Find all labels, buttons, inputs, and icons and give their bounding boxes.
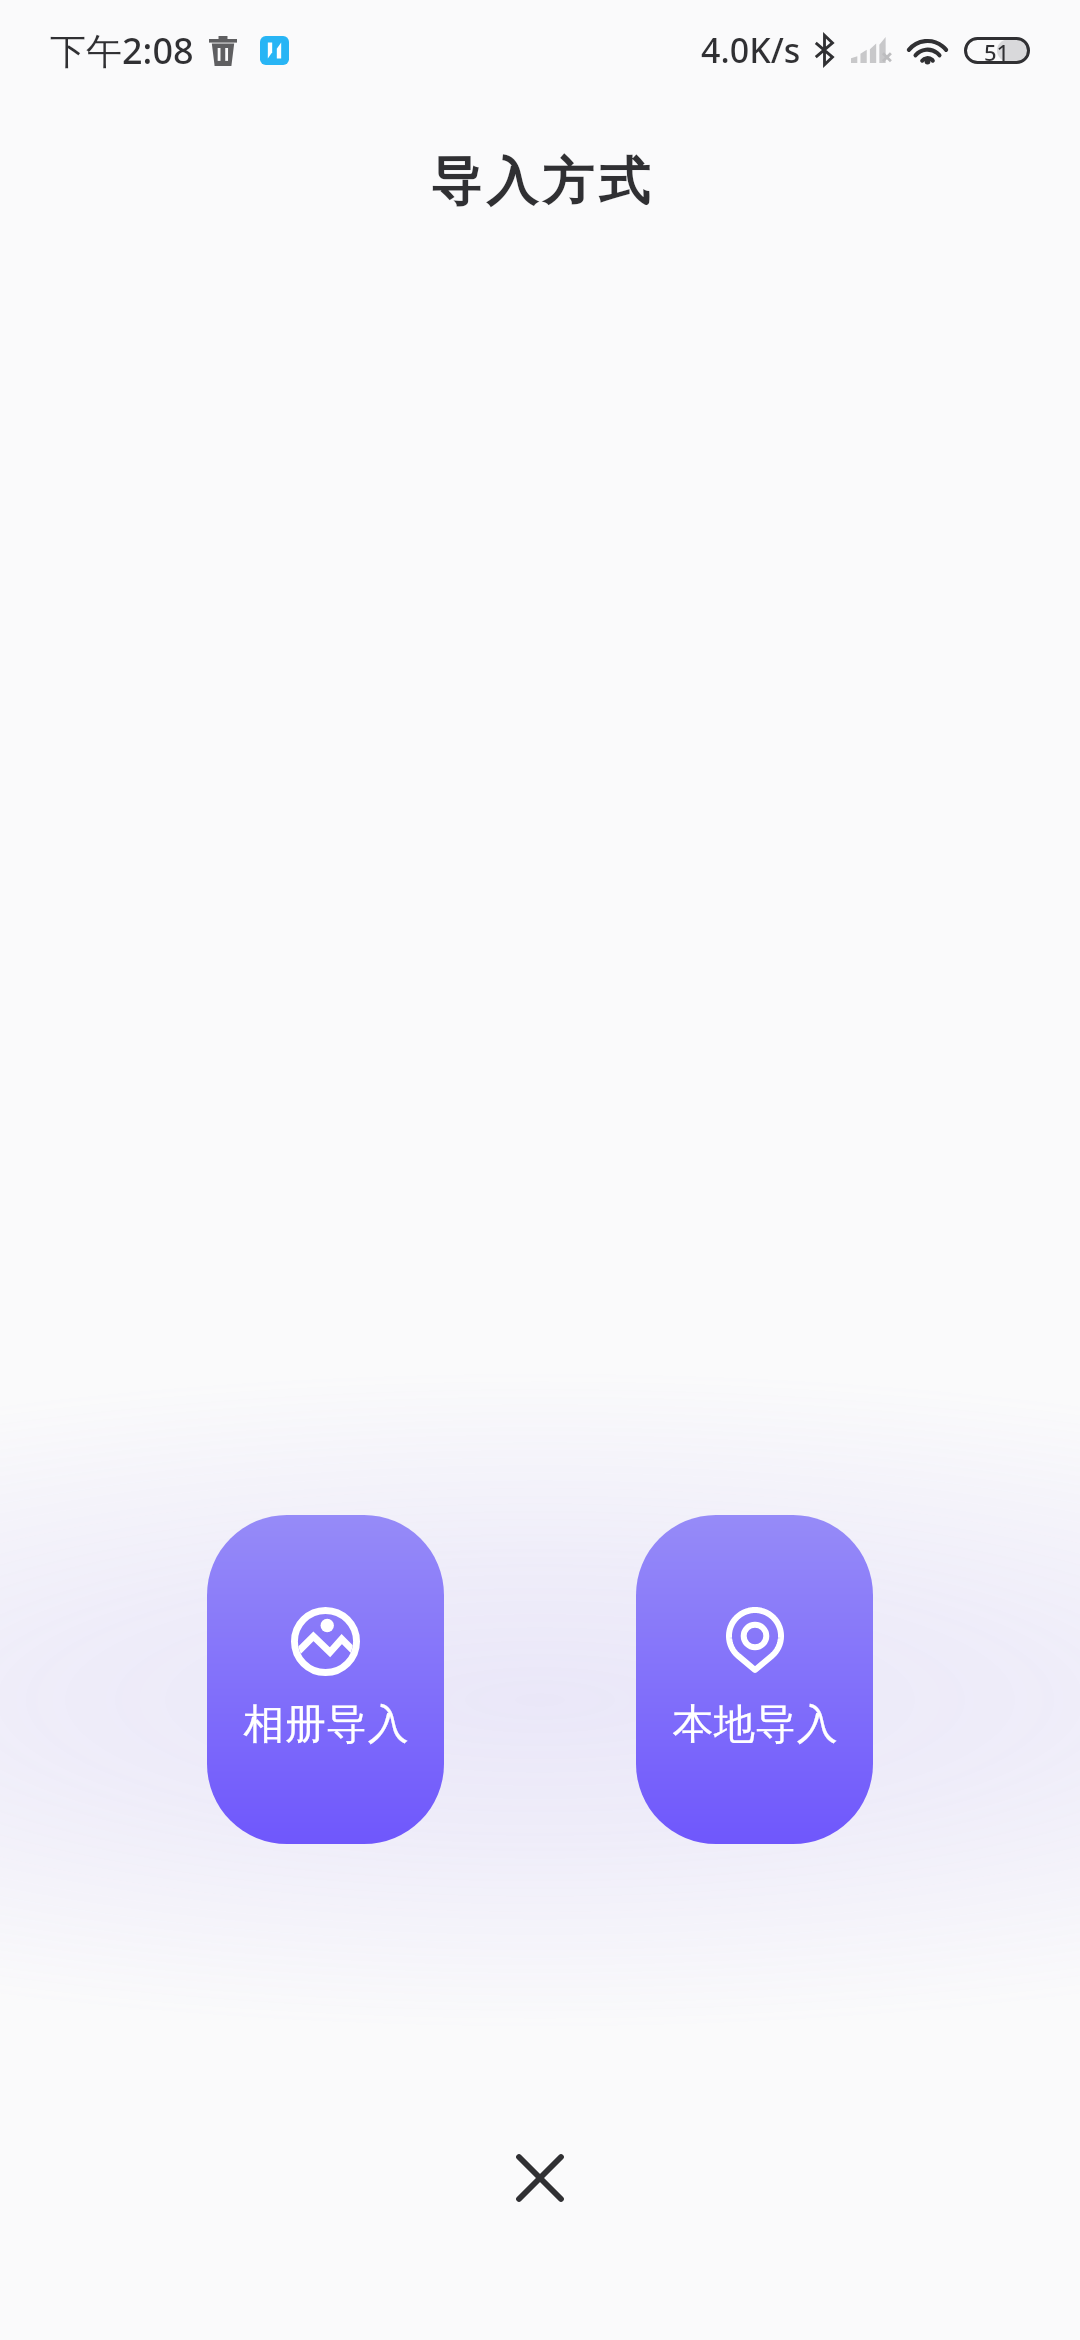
staticText: 4.0K/s <box>701 27 801 73</box>
staticText: 下午2:08 <box>50 26 194 75</box>
button[interactable]: 相册导入 <box>207 1515 444 1844</box>
staticText: 导入方式 <box>428 150 652 214</box>
staticText: 本地导入 <box>672 1699 838 1751</box>
button[interactable]: 本地导入 <box>636 1515 873 1844</box>
button[interactable]: 关闭 <box>485 2123 595 2233</box>
staticText: 相册导入 <box>243 1699 409 1751</box>
staticText: 51 <box>984 37 1010 64</box>
